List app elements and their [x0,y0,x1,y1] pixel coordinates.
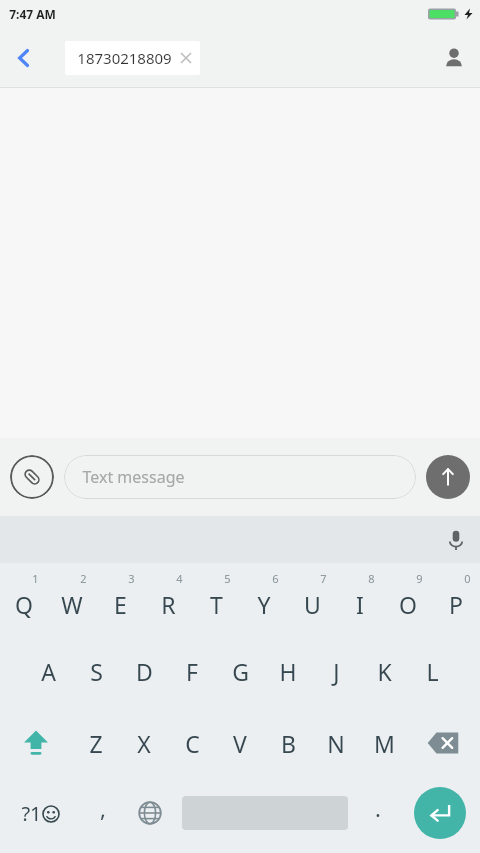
button[interactable]: Z [72,707,120,779]
staticText: F [186,656,198,687]
button[interactable]: P [432,563,480,635]
staticText: Text message [82,466,185,488]
button[interactable]: . [355,779,400,847]
staticText: 7:47 AM [9,6,56,22]
button[interactable]: L [408,635,456,707]
button[interactable]: Y [240,563,288,635]
button[interactable]: ?1 [0,779,80,847]
staticText: 7 [320,571,327,586]
staticText: A [41,656,56,687]
button[interactable]: Back [0,34,48,82]
button[interactable]: N [312,707,360,779]
button[interactable]: G [216,635,264,707]
button[interactable]: S [72,635,120,707]
button[interactable]: Send [426,455,470,499]
staticText: L [426,656,439,687]
staticText: Q [15,589,33,620]
staticText: 5 [224,571,231,586]
staticText: 0 [464,571,471,586]
button[interactable]: Contact details [428,32,480,84]
staticText: M [374,728,395,759]
button[interactable]: J [312,635,360,707]
staticText: N [327,728,345,759]
staticText: 6 [272,571,279,586]
staticText: 3 [128,571,135,586]
button[interactable]: D [120,635,168,707]
staticText: K [377,656,392,687]
button[interactable]: Shift [0,707,72,779]
staticText: ?1 [21,800,42,827]
staticText: C [185,728,200,759]
staticText: I [356,589,364,620]
staticText: W [61,589,83,620]
button[interactable]: O [384,563,432,635]
staticText: O [399,589,417,620]
staticText: U [304,589,321,620]
button[interactable]: T [192,563,240,635]
button[interactable]: I [336,563,384,635]
button[interactable]: R [144,563,192,635]
staticText: 2 [80,571,87,586]
button[interactable]: Q [0,563,48,635]
staticText: B [281,728,296,759]
button[interactable]: A [24,635,72,707]
button[interactable]: C [168,707,216,779]
staticText: H [279,656,297,687]
staticText: . [375,793,381,823]
button[interactable]: Backspace [408,707,480,779]
button[interactable]: Attach [10,455,54,499]
staticText: E [114,589,127,620]
staticText: X [137,728,151,759]
staticText: D [136,656,153,687]
staticText: 4 [176,571,183,586]
button[interactable]: E [96,563,144,635]
button[interactable]: M [360,707,408,779]
button[interactable]: F [168,635,216,707]
button[interactable]: 18730218809 [65,41,200,75]
staticText: 8 [368,571,375,586]
staticText: , [100,793,106,823]
staticText: Y [257,589,271,620]
staticText: Z [89,728,103,759]
button[interactable]: Text message [64,455,416,499]
button[interactable]: V [216,707,264,779]
staticText: J [333,656,340,687]
button[interactable]: H [264,635,312,707]
staticText: 18730218809 [77,48,172,68]
staticText: R [161,589,176,620]
staticText: P [449,589,463,620]
button[interactable]: Change language [125,779,175,847]
staticText: G [232,656,249,687]
button[interactable]: U [288,563,336,635]
button[interactable] [175,779,355,847]
staticText: 9 [416,571,423,586]
staticText: T [210,589,223,620]
button[interactable]: W [48,563,96,635]
button[interactable]: X [120,707,168,779]
button[interactable]: Enter [400,779,480,847]
staticText: S [90,656,103,687]
button[interactable]: Voice input [432,516,480,563]
staticText: V [233,728,247,759]
button[interactable]: K [360,635,408,707]
button[interactable]: B [264,707,312,779]
staticText: 1 [32,571,39,586]
button[interactable]: , [80,779,125,847]
